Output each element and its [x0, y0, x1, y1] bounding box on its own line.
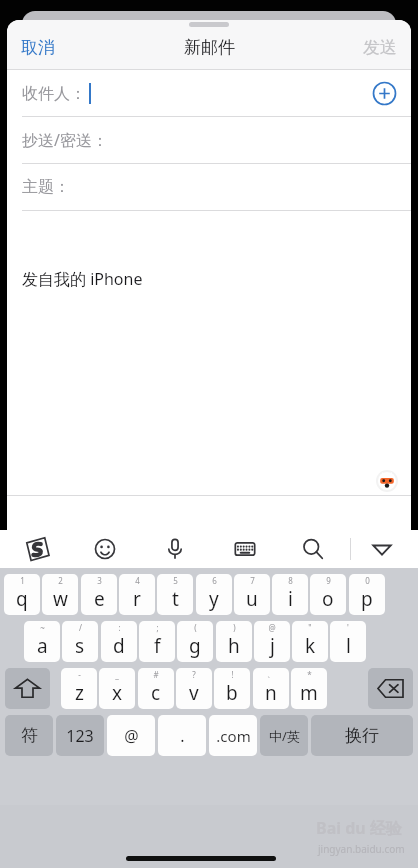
staticText: ! [231, 669, 234, 680]
staticText: 7 [250, 575, 255, 586]
staticText: 2 [58, 575, 63, 586]
button[interactable]: 符 [5, 715, 53, 756]
staticText: ( [194, 622, 197, 633]
staticText: .com [216, 726, 251, 746]
staticText: * [307, 669, 312, 680]
staticText: 、 [267, 669, 275, 679]
staticText: 发自我的 iPhone [22, 268, 143, 290]
button[interactable]: @ [254, 621, 290, 662]
button[interactable]: 收起键盘 [367, 534, 397, 564]
staticText: w [53, 586, 68, 612]
staticText: a [37, 633, 48, 659]
staticText: : [118, 622, 121, 633]
staticText: 1 [20, 575, 25, 586]
staticText: ? [192, 669, 196, 680]
staticText: c [151, 680, 161, 706]
staticText: ) [233, 622, 236, 633]
button[interactable]: 、 [253, 668, 289, 709]
staticText: 4 [135, 575, 140, 586]
button[interactable]: ? [176, 668, 212, 709]
button[interactable]: 8 [272, 574, 308, 615]
staticText: / [79, 622, 82, 633]
button[interactable]: ( [177, 621, 213, 662]
staticText: g [189, 633, 201, 659]
button[interactable]: 5 [157, 574, 193, 615]
staticText: p [361, 586, 373, 612]
button[interactable]: .com [209, 715, 257, 756]
staticText: - [78, 669, 81, 680]
button[interactable]: 抄送/密送： [7, 117, 411, 163]
staticText: h [228, 633, 240, 659]
staticText: 换行 [345, 725, 379, 746]
button[interactable]: : [101, 621, 137, 662]
button[interactable]: 123 [56, 715, 104, 756]
button[interactable]: . [158, 715, 206, 756]
staticText: ; [156, 622, 159, 633]
button[interactable]: 表情 [90, 534, 120, 564]
button[interactable]: 取消 [7, 31, 69, 64]
staticText: . [180, 725, 185, 747]
staticText: 9 [326, 575, 331, 586]
button[interactable]: 换行 [311, 715, 413, 756]
staticText: ~ [40, 622, 45, 633]
button[interactable]: ' [330, 621, 366, 662]
button[interactable]: 2 [42, 574, 78, 615]
button[interactable]: 发送 [349, 31, 411, 64]
staticText: 发送 [363, 37, 397, 58]
staticText: 中/英 [269, 727, 300, 745]
button[interactable]: 9 [310, 574, 346, 615]
button[interactable]: 添加收件人 [371, 80, 398, 107]
staticText: i [288, 586, 293, 612]
staticText: @ [124, 725, 139, 747]
staticText: 抄送/密送： [22, 129, 108, 151]
button[interactable]: 0 [349, 574, 385, 615]
button[interactable]: 搜索 [298, 534, 328, 564]
button[interactable]: 输入法 [22, 534, 52, 564]
staticText: d [113, 633, 125, 659]
staticText: v [189, 680, 199, 706]
staticText: x [112, 680, 123, 706]
button[interactable]: 4 [119, 574, 155, 615]
button[interactable]: * [291, 668, 327, 709]
staticText: n [265, 680, 277, 706]
button[interactable]: ; [139, 621, 175, 662]
button[interactable]: 3 [81, 574, 117, 615]
staticText: jingyan.baidu.com [318, 842, 405, 856]
button[interactable]: / [62, 621, 98, 662]
button[interactable]: 发自我的 iPhone [7, 211, 411, 495]
button[interactable]: 1 [4, 574, 40, 615]
button[interactable]: ) [216, 621, 252, 662]
button[interactable]: # [138, 668, 174, 709]
staticText: 123 [66, 725, 94, 747]
button[interactable]: 6 [196, 574, 232, 615]
staticText: o [322, 586, 334, 612]
staticText: 收件人： [22, 84, 86, 104]
button[interactable]: _ [99, 668, 135, 709]
staticText: 新邮件 [184, 37, 235, 58]
staticText: e [94, 586, 105, 612]
staticText: ' [347, 622, 349, 633]
button[interactable]: 主题： [7, 164, 411, 210]
staticText: 3 [97, 575, 102, 586]
button[interactable]: - [61, 668, 97, 709]
button[interactable]: ~ [24, 621, 60, 662]
staticText: " [308, 622, 312, 633]
staticText: y [209, 586, 219, 612]
staticText: b [226, 680, 238, 706]
staticText: @ [268, 622, 276, 633]
button[interactable]: 语音输入 [160, 534, 190, 564]
button[interactable]: Shift [5, 668, 50, 709]
button[interactable]: " [292, 621, 328, 662]
staticText: l [346, 633, 351, 659]
staticText: _ [115, 669, 119, 680]
button[interactable]: 键盘设置 [230, 534, 260, 564]
button[interactable]: ! [214, 668, 250, 709]
staticText: f [154, 633, 161, 659]
button[interactable]: @ [107, 715, 155, 756]
button[interactable]: 中/英 [260, 715, 308, 756]
button[interactable]: 收件人： [7, 70, 411, 116]
button[interactable]: 7 [234, 574, 270, 615]
staticText: 0 [365, 575, 370, 586]
button[interactable]: Backspace [368, 668, 413, 709]
staticText: 取消 [21, 37, 55, 58]
